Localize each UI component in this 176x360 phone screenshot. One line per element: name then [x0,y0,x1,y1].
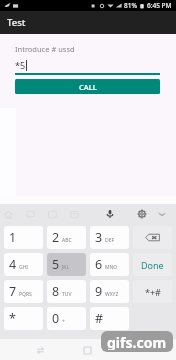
staticText: *5 [15,59,26,71]
button[interactable]: 7 [4,280,43,303]
button[interactable]: Settings [133,205,151,223]
staticText: 81% [124,1,137,10]
staticText: + [62,318,65,325]
staticText: Done [141,259,164,271]
staticText: gifs.com [107,333,167,350]
button[interactable]: 1 [4,226,43,249]
staticText: *+# [145,286,161,298]
button[interactable]: 4 [4,253,43,276]
staticText: 0 [52,310,60,327]
staticText: WXYZ [105,291,119,298]
button[interactable]: Back [31,341,49,359]
button[interactable]: Recents [78,341,96,359]
staticText: 7 [9,283,17,300]
button[interactable]: 0 [47,307,86,330]
button[interactable]: 8 [47,280,86,303]
staticText: JKL [62,264,70,271]
staticText: GHI [19,264,29,271]
button[interactable]: Backspace [133,226,172,249]
staticText: Introduce # ussd [15,44,75,54]
staticText: Test [7,16,26,29]
other: Backspace [145,230,160,245]
button[interactable]: 9 [90,280,129,303]
staticText: 6 [95,256,103,273]
button[interactable]: 3 [90,226,129,249]
staticText: # [95,310,104,327]
staticText: 9 [95,283,103,300]
staticText: 5 [52,256,60,273]
staticText: DEF [105,237,115,244]
button[interactable]: 6 [90,253,129,276]
staticText: CALL [79,82,97,92]
button[interactable]: 5 [47,253,86,276]
staticText: 4 [9,256,17,273]
staticText: PQRS [19,291,32,298]
button[interactable]: 2 [47,226,86,249]
button[interactable]: CALL [15,79,160,94]
staticText: 3 [95,229,103,246]
staticText: TUV [62,291,72,298]
button[interactable]: * [4,307,43,330]
button[interactable]: *+# [133,280,172,303]
button[interactable]: Voice input [101,205,119,223]
button[interactable]: # [90,307,129,330]
staticText: 1 [9,229,17,246]
staticText: 8 [52,283,60,300]
staticText: 6:45 PM [147,1,172,10]
staticText: 2 [52,229,60,246]
button[interactable]: Done [133,253,172,276]
staticText: ABC [62,237,72,244]
button[interactable]: Collapse keyboard [153,205,171,223]
staticText: MNO [105,264,118,271]
staticText: * [9,310,16,327]
